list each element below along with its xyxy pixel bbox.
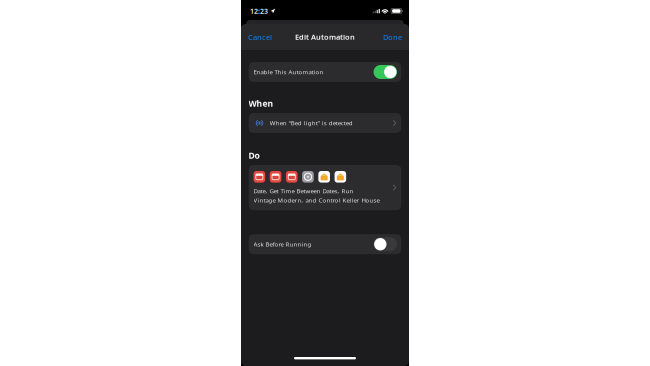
button[interactable]: Cancel [241, 24, 279, 50]
staticText: When [248, 98, 273, 109]
button[interactable]: Ask Before Running [249, 234, 401, 254]
staticText: When “Bed light” is detected [270, 119, 353, 127]
button[interactable]: Enable This Automation [249, 62, 401, 82]
staticText: Edit Automation [295, 32, 355, 42]
staticText: 12:23 [250, 6, 268, 16]
staticText: Cancel [248, 32, 272, 42]
button[interactable]: Done [376, 24, 409, 50]
button[interactable]: Date, Get Time Between Dates, Run [249, 165, 401, 210]
staticText: Do [248, 150, 259, 161]
staticText: Date, Get Time Between Dates, Run [254, 187, 354, 195]
staticText: Enable This Automation [254, 68, 324, 76]
staticText: Vintage Modern, and Control Keller House [254, 196, 380, 204]
button[interactable]: When “Bed light” is detected [249, 113, 401, 133]
staticText: Ask Before Running [254, 240, 312, 248]
staticText: Done [383, 32, 402, 42]
